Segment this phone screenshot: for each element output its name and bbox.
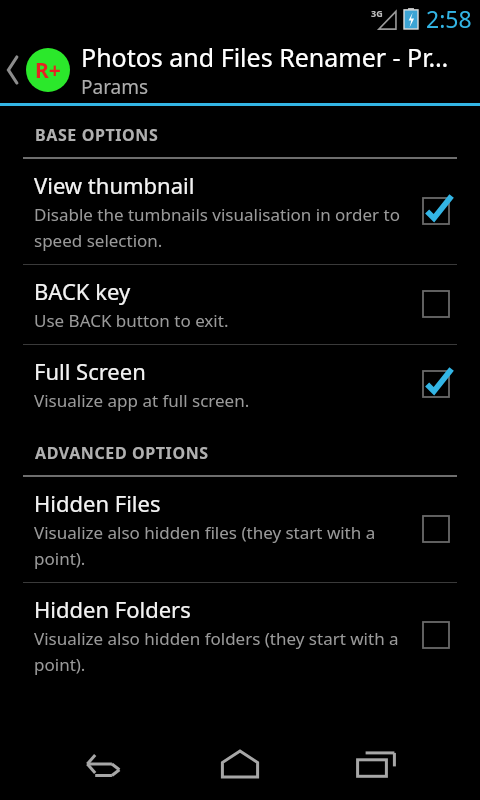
staticText: R+ bbox=[35, 56, 61, 85]
button[interactable]: BACK key bbox=[0, 265, 480, 344]
button[interactable]: Full Screen bbox=[0, 345, 480, 424]
staticText: 2:58 bbox=[426, 3, 472, 34]
staticText: Hidden Folders bbox=[34, 594, 191, 624]
other: Up bbox=[0, 36, 26, 103]
staticText: Photos and Files Renamer - Pr… bbox=[81, 40, 449, 74]
staticText: Hidden Files bbox=[34, 488, 161, 518]
staticText: Params bbox=[81, 74, 149, 100]
button[interactable]: Hidden Folders bbox=[0, 583, 480, 688]
staticText: Visualize app at full screen. bbox=[34, 389, 250, 412]
staticText: Visualize also hidden files (they start … bbox=[34, 521, 402, 570]
button[interactable]: Hidden Files bbox=[0, 477, 480, 582]
staticText: 3G bbox=[371, 7, 383, 19]
staticText: Visualize also hidden folders (they star… bbox=[34, 627, 402, 676]
staticText: Use BACK button to exit. bbox=[34, 309, 229, 332]
staticText: Full Screen bbox=[34, 356, 146, 386]
button[interactable]: Back bbox=[68, 728, 140, 800]
staticText: Disable the tumbnails visualisation in o… bbox=[34, 203, 402, 252]
button[interactable]: Home bbox=[204, 728, 276, 800]
button[interactable]: View thumbnail bbox=[0, 159, 480, 264]
staticText: BACK key bbox=[34, 276, 131, 306]
staticText: ADVANCED OPTIONS bbox=[35, 442, 209, 464]
button[interactable]: Up bbox=[0, 36, 480, 103]
staticText: BASE OPTIONS bbox=[35, 124, 159, 146]
button[interactable]: Recent apps bbox=[340, 728, 412, 800]
staticText: View thumbnail bbox=[34, 170, 195, 200]
